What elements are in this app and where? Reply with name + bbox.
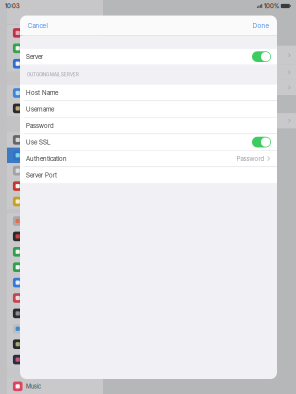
staticText: 100% [264, 2, 279, 10]
button[interactable]: Host Name [20, 85, 277, 101]
button[interactable]: Settings item [7, 229, 103, 244]
button[interactable]: Settings item [7, 244, 103, 259]
button[interactable]: Password [20, 118, 277, 134]
button[interactable]: Settings item [7, 306, 103, 321]
button[interactable]: Settings item [7, 56, 103, 71]
staticText: Username [26, 105, 54, 113]
button[interactable]: Settings item [7, 132, 103, 148]
button[interactable]: Settings item [7, 259, 103, 275]
button[interactable]: Settings item [7, 275, 103, 290]
staticText: Password [237, 155, 265, 162]
button[interactable]: Use SSL [20, 134, 277, 150]
button[interactable]: Settings item [7, 321, 103, 336]
staticText: Authentication [26, 155, 67, 162]
button[interactable]: Settings item [7, 25, 103, 41]
staticText: Done [252, 21, 269, 30]
button[interactable]: Settings item [7, 163, 103, 178]
button[interactable]: Username [20, 101, 277, 117]
button[interactable]: Settings item [7, 352, 103, 367]
button[interactable]: Settings item [7, 213, 103, 229]
staticText: Cancel [27, 21, 47, 30]
staticText: Music [26, 383, 41, 390]
staticText: Use SSL [26, 138, 50, 146]
button[interactable]: Cancel [20, 15, 54, 35]
button[interactable]: Settings item [7, 178, 103, 194]
button[interactable]: Server Port [20, 167, 277, 183]
staticText: OUTGOING MAIL SERVER [27, 72, 79, 77]
staticText: Server Port [26, 171, 57, 179]
staticText: 10:03 [5, 2, 20, 10]
button[interactable]: Authentication [20, 151, 277, 167]
button[interactable]: Settings item [7, 194, 103, 209]
button[interactable]: Settings item [7, 290, 103, 306]
button[interactable]: Settings item [7, 85, 103, 101]
button[interactable]: Settings item [7, 41, 103, 56]
button[interactable]: Settings item [7, 336, 103, 352]
button[interactable]: Done [245, 15, 277, 35]
button[interactable]: Settings item [7, 148, 103, 163]
button[interactable]: Server [20, 49, 277, 64]
staticText: Password [26, 122, 54, 129]
button[interactable]: Music [7, 379, 103, 394]
staticText: Host Name [26, 89, 58, 96]
staticText: Server [26, 53, 43, 60]
button[interactable]: Settings item [7, 101, 103, 116]
